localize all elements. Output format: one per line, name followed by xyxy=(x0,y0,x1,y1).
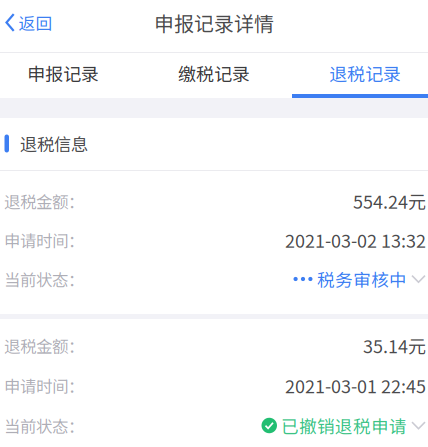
button[interactable]: 申报记录 xyxy=(0,53,126,98)
staticText: 当前状态： xyxy=(4,267,84,291)
staticText: 退税记录 xyxy=(329,60,401,86)
staticText: 已撤销退税申请 xyxy=(281,413,407,438)
button[interactable]: 缴税记录 xyxy=(151,53,277,98)
staticText: 35.14元 xyxy=(363,332,426,359)
staticText: 申请时间： xyxy=(4,228,84,252)
staticText: 税务审核中 xyxy=(317,266,407,292)
staticText: 退税信息 xyxy=(20,131,88,156)
button[interactable]: 返回 xyxy=(0,10,60,34)
staticText: 缴税记录 xyxy=(178,60,250,86)
staticText: 申请时间： xyxy=(4,374,84,397)
button[interactable]: 当前状态： xyxy=(0,405,428,445)
staticText: 退税金额： xyxy=(4,334,84,357)
staticText: 2021-03-02 13:32 xyxy=(285,227,426,253)
staticText: 申报记录 xyxy=(27,60,99,86)
staticText: 退税金额： xyxy=(4,189,84,213)
staticText: 申报记录详情 xyxy=(154,8,274,37)
button[interactable]: 当前状态： xyxy=(0,259,428,298)
staticText: 2021-03-01 22:45 xyxy=(285,372,426,399)
staticText: 返回 xyxy=(18,10,52,34)
button[interactable]: 退税记录 xyxy=(302,53,428,98)
staticText: 当前状态： xyxy=(4,414,84,437)
staticText: 554.24元 xyxy=(353,188,426,214)
